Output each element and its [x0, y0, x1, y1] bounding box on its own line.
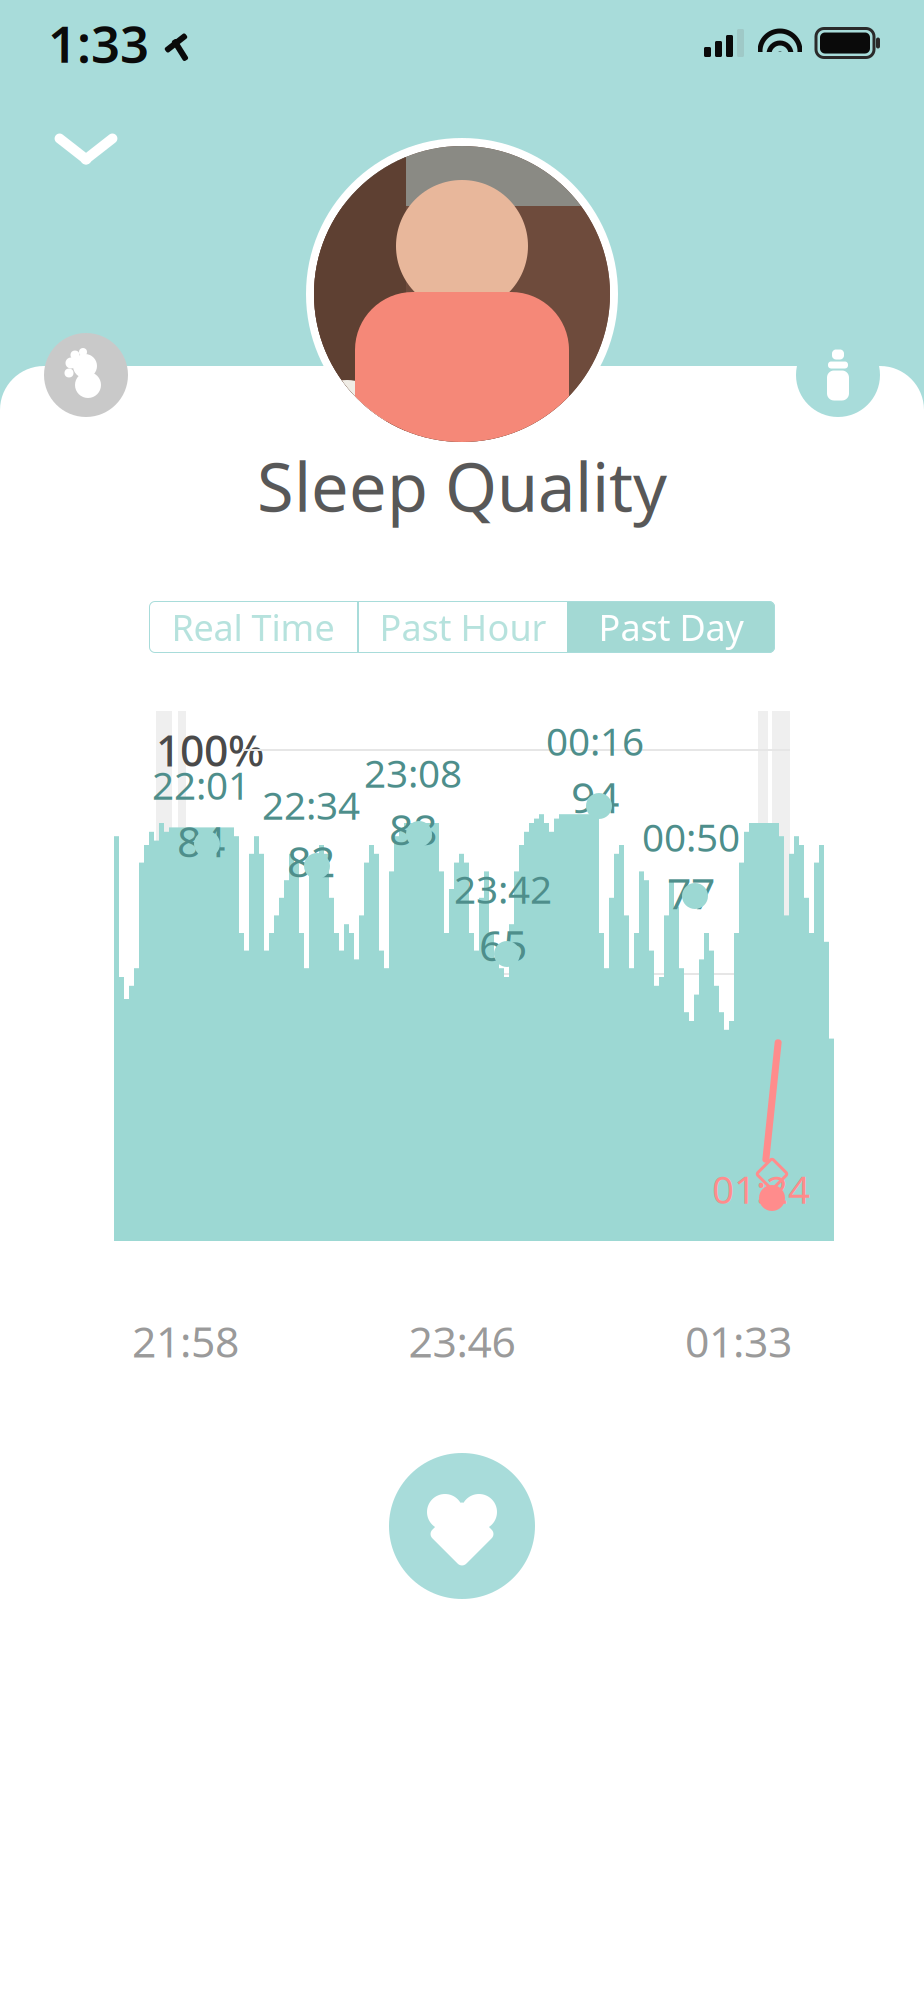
staticText: 23:42	[454, 863, 552, 914]
staticText: 00:50	[642, 811, 740, 862]
staticText: 01:33	[685, 1313, 792, 1369]
staticText: 84	[177, 812, 225, 869]
staticText: Past Day	[598, 603, 743, 651]
button[interactable]: Feeding	[796, 333, 880, 417]
staticText: 00:16	[546, 715, 644, 766]
button[interactable]: Activity	[44, 333, 128, 417]
staticText: 77	[667, 864, 715, 921]
staticText: 22:34	[262, 779, 360, 830]
staticText: 82	[287, 832, 335, 889]
button[interactable]: Vitals	[389, 1453, 535, 1599]
staticText: 21:58	[132, 1313, 239, 1369]
button[interactable]: Collapse	[46, 118, 126, 180]
staticText: 88	[389, 800, 437, 857]
staticText: 1:33	[48, 9, 149, 77]
staticText: 65	[479, 916, 527, 973]
staticText: 23:08	[364, 747, 462, 798]
staticText: Past Hour	[379, 603, 546, 651]
button[interactable]: Real Time	[149, 601, 357, 653]
staticText: 22:01	[152, 759, 250, 810]
staticText: Real Time	[171, 603, 334, 651]
staticText: 94	[571, 768, 619, 825]
staticText: Sleep Quality	[257, 442, 667, 530]
button[interactable]: Past Day	[567, 601, 775, 653]
staticText: 23:46	[408, 1313, 515, 1369]
staticText: 01:24	[712, 1163, 810, 1214]
staticText: 100%	[156, 722, 264, 778]
button[interactable]: Past Hour	[359, 601, 567, 653]
